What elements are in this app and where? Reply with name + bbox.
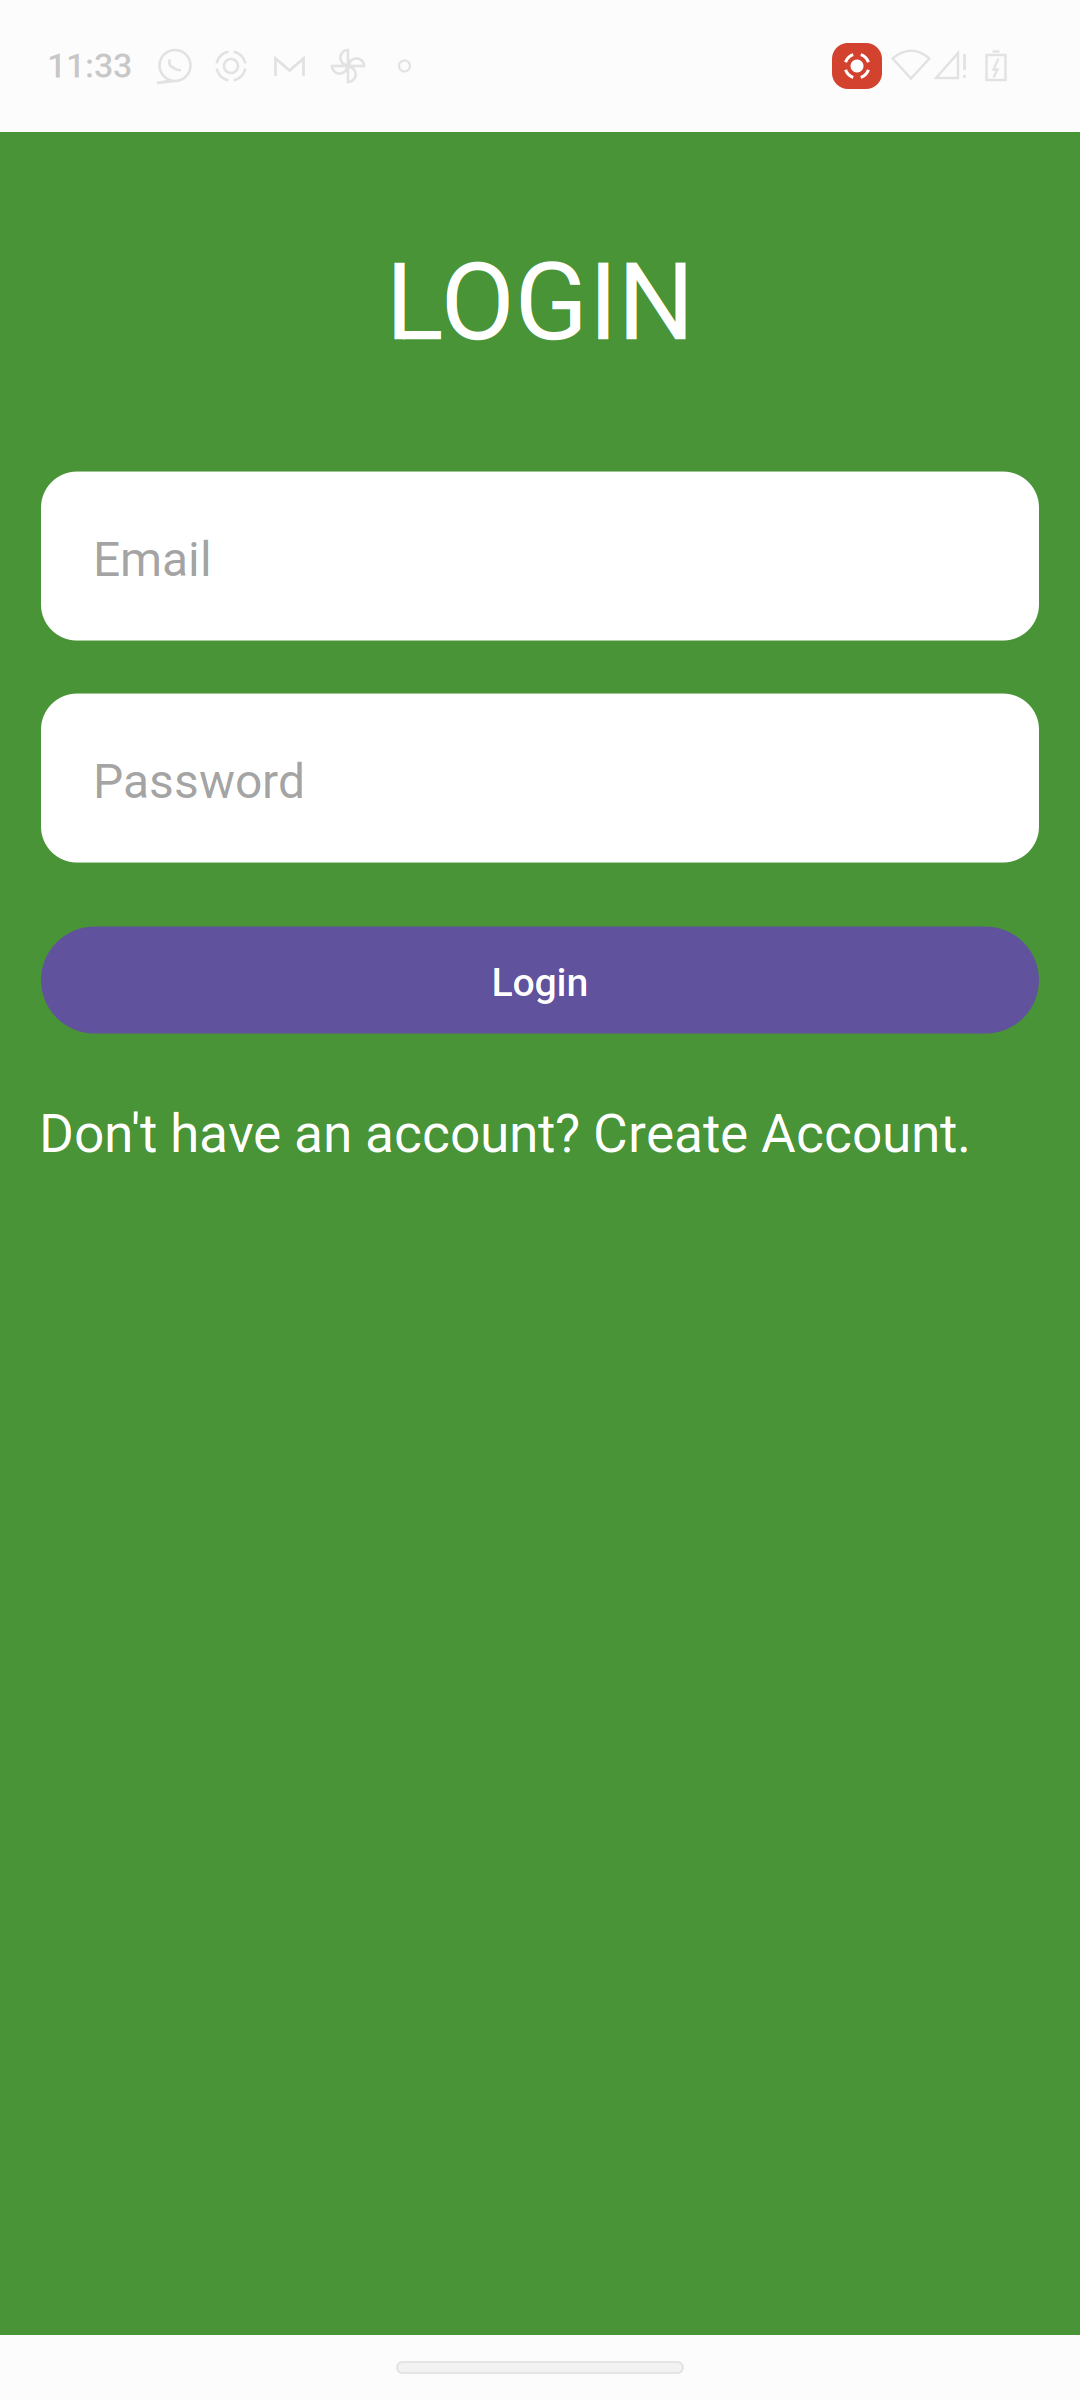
staticText: Don't have an account? Create Account.	[39, 1103, 971, 1165]
button[interactable]: Don't have an account? Create Account.	[0, 1103, 1080, 1165]
staticText: Email	[93, 531, 212, 588]
button[interactable]: Login	[41, 927, 1039, 1034]
staticText: 11:33	[47, 46, 132, 86]
button[interactable]: Email	[41, 472, 1039, 641]
button[interactable]: Password	[41, 694, 1039, 863]
staticText: LOGIN	[385, 239, 694, 366]
staticText: Login	[491, 959, 588, 1006]
staticText: Password	[93, 753, 305, 810]
